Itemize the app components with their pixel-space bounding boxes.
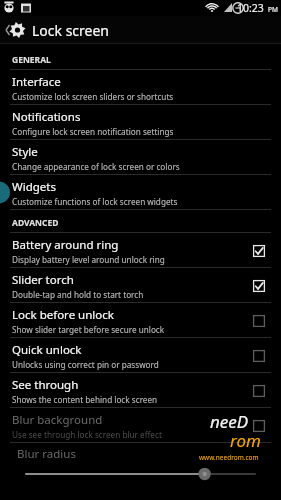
staticText: GENERAL [12,54,51,66]
button[interactable]: Blur radius [0,443,281,481]
staticText: PM [268,5,278,14]
staticText: Double-tap and hold to start torch [12,289,144,300]
staticText: Blur radius [17,446,76,462]
button[interactable]: Lock before unlock [0,303,281,338]
staticText: Configure lock screen notification setti… [12,126,174,137]
staticText: Slider torch [12,272,74,288]
staticText: rom [230,429,261,452]
button[interactable]: Battery around ring toggle [249,241,269,261]
staticText: Shows the content behind lock screen [12,394,158,405]
staticText: Style [12,144,38,160]
staticText: Use see through lock screen blur effect [12,429,162,440]
staticText: Blur background [12,412,103,428]
button[interactable]: Slider torch [0,268,281,303]
staticText: Show slider target before secure unlock [12,324,165,335]
staticText: neeD [210,410,249,433]
staticText: Unlocks using correct pin or password [12,359,159,370]
staticText: Notifications [12,109,81,125]
staticText: Battery around ring [12,237,119,253]
staticText: Customize lock screen sliders or shortcu… [12,91,174,102]
staticText: Quick unlock [12,342,82,358]
button[interactable]: Back to settings [0,16,281,44]
staticText: See through [12,377,79,393]
button[interactable]: Battery around ring [0,233,281,268]
staticText: ADVANCED [12,217,59,229]
button[interactable]: Style [0,140,281,175]
staticText: Display battery level around unlock ring [12,254,165,265]
staticText: Customize functions of lock screen widge… [12,196,178,207]
button[interactable]: Lock before unlock toggle [249,311,269,331]
staticText: Change appearance of lock screen or colo… [12,161,180,172]
button[interactable]: Blur background [0,408,281,443]
staticText: Widgets [12,179,56,195]
button[interactable]: Widgets [0,175,281,210]
button[interactable]: See through [0,373,281,408]
button[interactable]: Quick unlock [0,338,281,373]
button[interactable]: Slider torch toggle [249,276,269,296]
button[interactable]: See through toggle [249,381,269,401]
button[interactable]: Notifications [0,105,281,140]
staticText: Lock screen [32,21,110,40]
button[interactable]: Quick unlock toggle [249,346,269,366]
button[interactable]: Blur background toggle [249,416,269,436]
button[interactable]: Interface [0,70,281,105]
staticText: Interface [12,74,61,90]
staticText: 10:23 [237,1,264,15]
staticText: Lock before unlock [12,307,114,323]
staticText: www.needrom.com [199,453,259,462]
